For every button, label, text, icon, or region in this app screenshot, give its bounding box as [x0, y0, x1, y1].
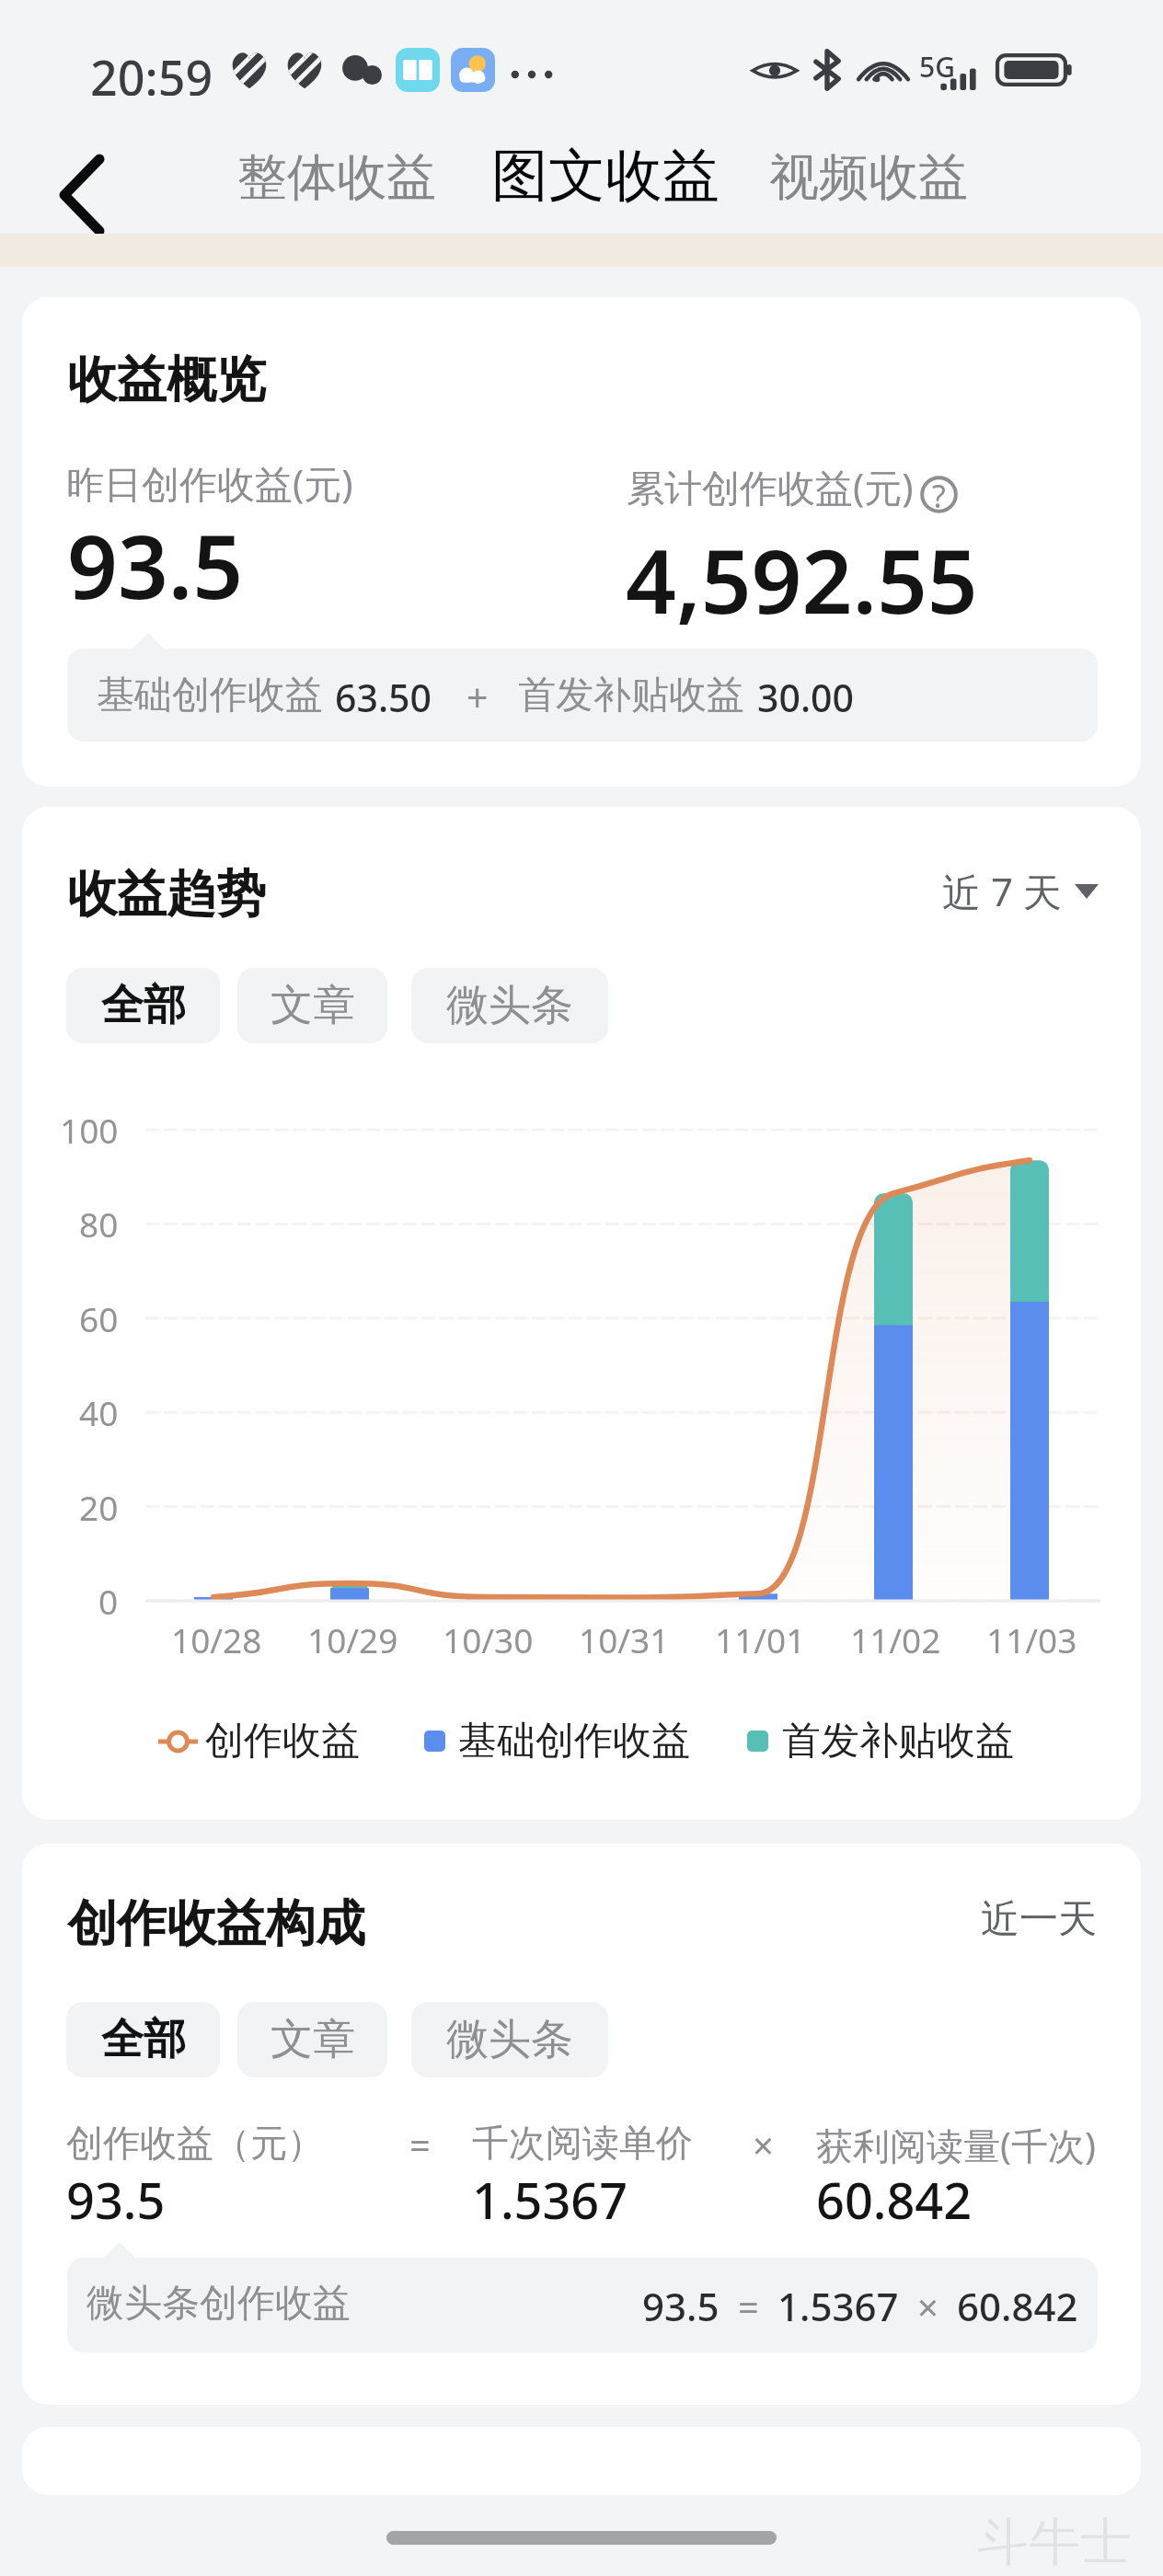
staticText: ×	[753, 2120, 774, 2169]
button[interactable]: Back	[36, 143, 128, 247]
staticText: 10/29	[307, 1616, 398, 1662]
staticText: 5G	[919, 48, 955, 86]
staticText: 创作收益构成	[67, 1892, 365, 1955]
staticText: 80	[79, 1201, 119, 1247]
staticText: 收益趋势	[67, 863, 266, 926]
staticText: 4,592.55	[626, 519, 978, 639]
staticText: 1.5367	[777, 2280, 899, 2332]
staticText: 100	[60, 1107, 119, 1153]
staticText: 整体收益	[237, 146, 436, 209]
staticText: 收益概览	[67, 349, 266, 411]
button[interactable]: 微头条	[411, 968, 608, 1043]
staticText: 创作收益	[205, 1717, 360, 1765]
staticText: 60	[79, 1295, 119, 1341]
button[interactable]: 文章	[237, 2002, 387, 2077]
staticText: +	[466, 672, 489, 723]
staticText: 文章	[271, 979, 355, 1032]
staticText: 昨日创作收益(元)	[66, 457, 353, 509]
button[interactable]: 视频收益	[769, 146, 968, 209]
staticText: 20:59	[90, 44, 213, 96]
staticText: =	[738, 2282, 759, 2331]
staticText: 文章	[271, 2013, 355, 2066]
staticText: 斗牛士	[977, 2510, 1132, 2575]
staticText: 1.5367	[472, 2166, 628, 2234]
staticText: 微头条	[446, 2013, 573, 2066]
staticText: 0	[98, 1578, 119, 1624]
button[interactable]: 整体收益	[237, 146, 436, 209]
staticText: 获利阅读量(千次)	[816, 2120, 1096, 2170]
staticText: 40	[79, 1389, 119, 1435]
staticText: 微头条创作收益	[86, 2280, 351, 2328]
staticText: 11/03	[986, 1616, 1077, 1662]
button[interactable]: 全部	[66, 968, 220, 1043]
staticText: 首发补贴收益	[518, 672, 744, 719]
button[interactable]: Help	[920, 476, 958, 513]
staticText: 千次阅读单价	[472, 2120, 693, 2166]
staticText: 基础创作收益	[97, 672, 323, 719]
staticText: 11/01	[715, 1616, 806, 1662]
staticText: 30.00	[757, 672, 854, 723]
button[interactable]: 微头条	[411, 2002, 608, 2077]
staticText: 全部	[101, 979, 186, 1032]
staticText: 10/31	[579, 1616, 670, 1662]
staticText: 微头条	[446, 979, 573, 1032]
staticText: 11/02	[850, 1616, 941, 1662]
button[interactable]: 近 7 天	[942, 865, 1062, 917]
staticText: 60.842	[957, 2280, 1078, 2332]
staticText: 累计创作收益(元)	[627, 461, 914, 512]
staticText: 近一天	[981, 1895, 1097, 1944]
staticText: 20	[79, 1484, 119, 1530]
button[interactable]: 文章	[237, 968, 387, 1043]
staticText: 全部	[101, 2013, 186, 2066]
staticText: 10/30	[443, 1616, 534, 1662]
staticText: ×	[917, 2282, 938, 2331]
staticText: 93.5	[66, 2166, 166, 2234]
button[interactable]: 全部	[66, 2002, 220, 2077]
staticText: 93.5	[67, 504, 244, 625]
staticText: 视频收益	[769, 146, 968, 209]
staticText: 基础创作收益	[458, 1717, 690, 1765]
staticText: 63.50	[335, 672, 432, 723]
staticText: 创作收益（元）	[66, 2120, 324, 2166]
staticText: =	[409, 2120, 431, 2169]
staticText: 图文收益	[491, 140, 720, 212]
button[interactable]: 图文收益	[491, 140, 720, 212]
staticText: 10/28	[171, 1616, 262, 1662]
staticText: 93.5	[642, 2280, 720, 2332]
staticText: 近 7 天	[942, 865, 1062, 917]
staticText: 60.842	[816, 2166, 973, 2234]
button[interactable]: 近一天	[981, 1895, 1097, 1944]
staticText: 首发补贴收益	[782, 1717, 1014, 1765]
staticText: ?	[932, 475, 946, 512]
